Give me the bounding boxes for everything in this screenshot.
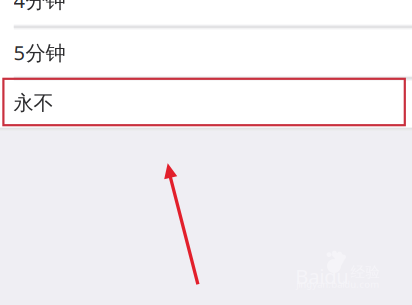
button[interactable]: 5分钟	[0, 26, 412, 78]
staticText: 永不	[14, 90, 54, 116]
staticText: 5分钟	[14, 39, 66, 66]
staticText: 4分钟	[14, 0, 66, 14]
button[interactable]: 4分钟	[0, 0, 412, 25]
button[interactable]: 永不	[0, 78, 412, 128]
